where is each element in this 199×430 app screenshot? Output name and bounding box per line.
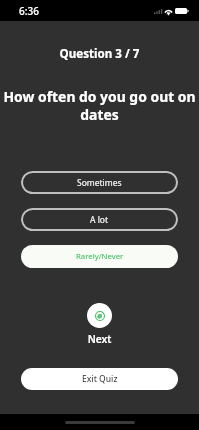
staticText: Sometimes bbox=[77, 177, 122, 189]
button[interactable]: A lot bbox=[21, 208, 178, 231]
button[interactable]: Sometimes bbox=[21, 171, 178, 194]
staticText: Rarely/Never bbox=[76, 251, 124, 262]
staticText: Exit Quiz bbox=[82, 373, 118, 385]
staticText: How often do you go out on dates bbox=[0, 87, 199, 124]
staticText: A lot bbox=[90, 214, 109, 226]
staticText: 6:36 bbox=[19, 4, 39, 18]
button[interactable]: Rarely/Never bbox=[21, 245, 178, 268]
button[interactable]: Exit Quiz bbox=[21, 368, 178, 390]
button[interactable]: Next bbox=[87, 303, 112, 328]
staticText: Next bbox=[0, 332, 199, 346]
staticText: Question 3 / 7 bbox=[0, 46, 199, 62]
